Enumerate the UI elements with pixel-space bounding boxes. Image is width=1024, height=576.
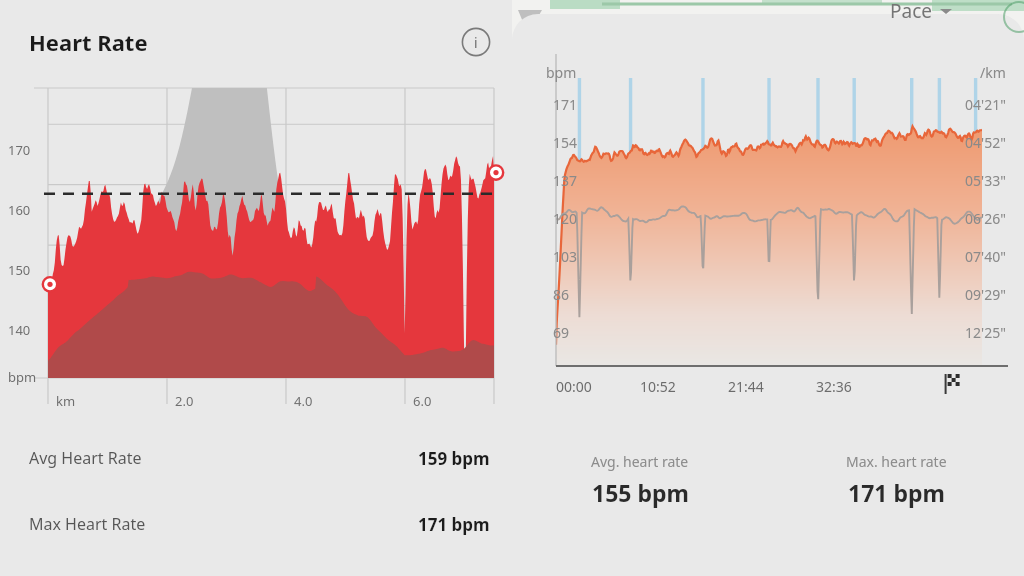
staticText: 170 xyxy=(8,141,31,159)
staticText: i xyxy=(474,33,478,52)
staticText: 137 xyxy=(553,171,578,190)
staticText: 171 bpm xyxy=(418,513,490,536)
staticText: 86 xyxy=(553,285,570,304)
staticText: Max Heart Rate xyxy=(29,513,146,535)
button[interactable]: Avg Heart Rate xyxy=(0,440,512,476)
staticText: bpm xyxy=(8,368,37,386)
staticText: 4.0 xyxy=(294,392,313,410)
staticText: 155 bpm xyxy=(592,477,689,508)
staticText: 6.0 xyxy=(413,392,432,410)
staticText: 171 xyxy=(553,95,578,114)
staticText: 32:36 xyxy=(816,377,852,396)
staticText: 12'25" xyxy=(965,323,1006,342)
staticText: 2.0 xyxy=(175,392,194,410)
staticText: bpm xyxy=(546,63,577,82)
staticText: Max. heart rate xyxy=(846,452,947,471)
button[interactable]: Max. heart rate xyxy=(768,452,1024,508)
staticText: 103 xyxy=(553,247,578,266)
button[interactable]: Avg. heart rate xyxy=(512,452,768,508)
button[interactable]: Pace xyxy=(884,0,958,26)
staticText: 04'21" xyxy=(965,95,1006,114)
staticText: 21:44 xyxy=(728,377,764,396)
staticText: 05'33" xyxy=(965,171,1006,190)
staticText: 69 xyxy=(553,323,570,342)
staticText: 160 xyxy=(8,201,31,219)
staticText: 04'52" xyxy=(965,133,1006,152)
staticText: 154 xyxy=(553,133,578,152)
button[interactable]: Information xyxy=(459,25,493,59)
staticText: Avg Heart Rate xyxy=(29,447,142,469)
staticText: Pace xyxy=(890,0,932,24)
button[interactable]: Max Heart Rate xyxy=(0,506,512,542)
staticText: 09'29" xyxy=(965,285,1006,304)
staticText: 150 xyxy=(8,261,31,279)
staticText: Heart Rate xyxy=(29,27,148,57)
staticText: 07'40" xyxy=(965,247,1006,266)
staticText: /km xyxy=(980,63,1006,82)
staticText: 120 xyxy=(553,209,578,228)
staticText: km xyxy=(56,392,76,410)
staticText: 171 bpm xyxy=(848,477,945,508)
staticText: 06'26" xyxy=(965,209,1006,228)
staticText: 00:00 xyxy=(556,377,592,396)
staticText: Avg. heart rate xyxy=(591,452,689,471)
staticText: 140 xyxy=(8,321,31,339)
staticText: 10:52 xyxy=(640,377,676,396)
staticText: 159 bpm xyxy=(418,447,490,470)
